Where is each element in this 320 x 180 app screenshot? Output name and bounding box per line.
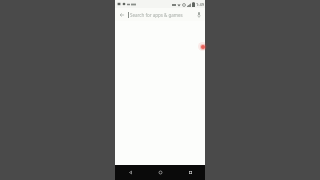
button[interactable]: Home (145, 165, 175, 180)
button[interactable]: Recent apps (175, 165, 205, 180)
button[interactable]: Search for apps & games (128, 8, 193, 21)
button[interactable]: Back (115, 165, 145, 180)
button[interactable]: Search by voice (193, 8, 205, 21)
staticText: Search for apps & games (130, 12, 183, 18)
staticText: 1:49 (196, 2, 204, 7)
button[interactable]: Navigate up (115, 8, 128, 21)
